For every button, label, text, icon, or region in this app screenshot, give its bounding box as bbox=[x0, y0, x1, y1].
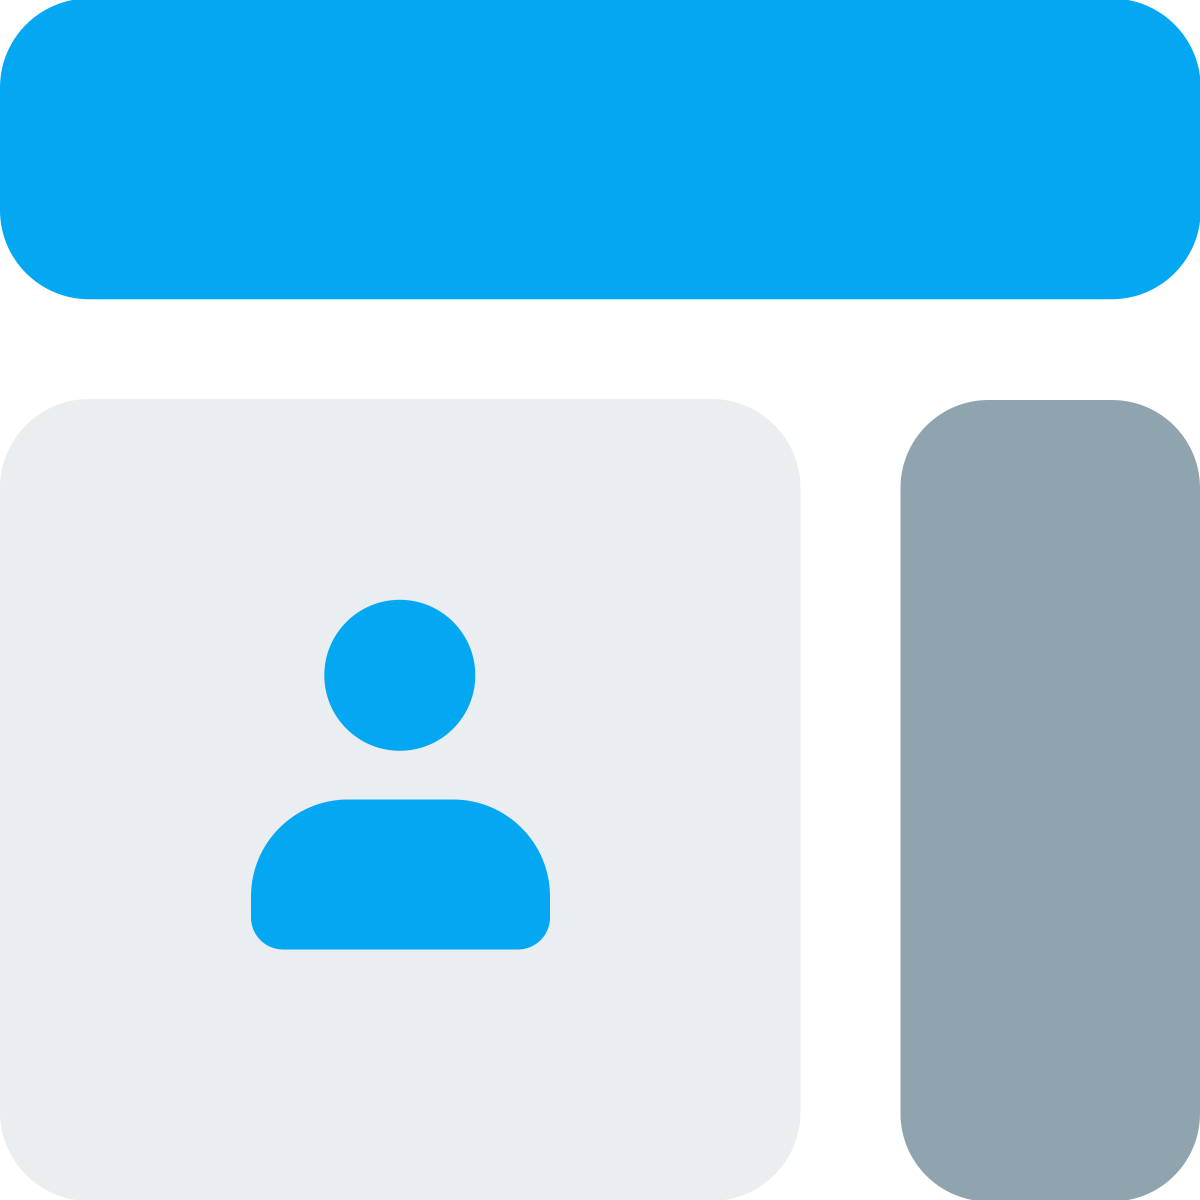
button[interactable]: Contact photo bbox=[0, 399, 800, 1200]
button[interactable]: Side panel bbox=[900, 400, 1200, 1200]
button[interactable]: Header banner bbox=[0, 0, 1200, 299]
